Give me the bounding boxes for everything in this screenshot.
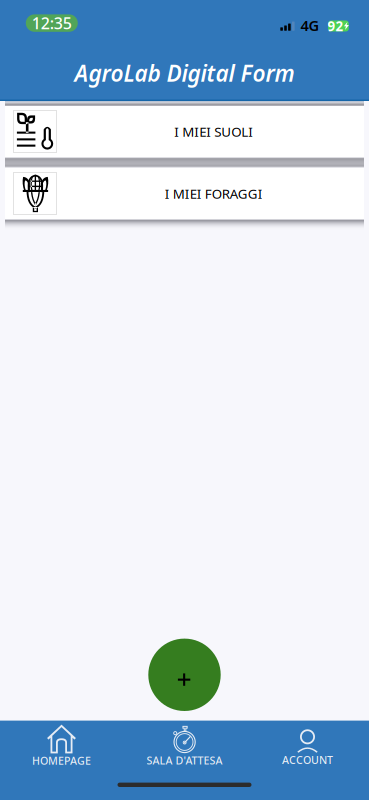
staticText: 12:35 (32, 12, 72, 34)
button[interactable]: ACCOUNT (246, 721, 369, 768)
staticText: AgroLab Digital Form (74, 58, 294, 88)
staticText: I MIEI SUOLI (174, 123, 253, 140)
button[interactable]: Add (148, 639, 221, 711)
button[interactable]: I MIEI SUOLI (5, 106, 364, 157)
button[interactable]: SALA D'ATTESA (123, 721, 246, 768)
staticText: HOMEPAGE (32, 754, 91, 768)
staticText: 4G (300, 16, 319, 35)
button[interactable]: HOMEPAGE (0, 721, 123, 768)
staticText: I MIEI FORAGGI (165, 185, 263, 202)
staticText: 92 (327, 17, 343, 35)
button[interactable]: I MIEI FORAGGI (5, 168, 364, 219)
staticText: ACCOUNT (282, 753, 333, 767)
staticText: SALA D'ATTESA (146, 753, 222, 767)
